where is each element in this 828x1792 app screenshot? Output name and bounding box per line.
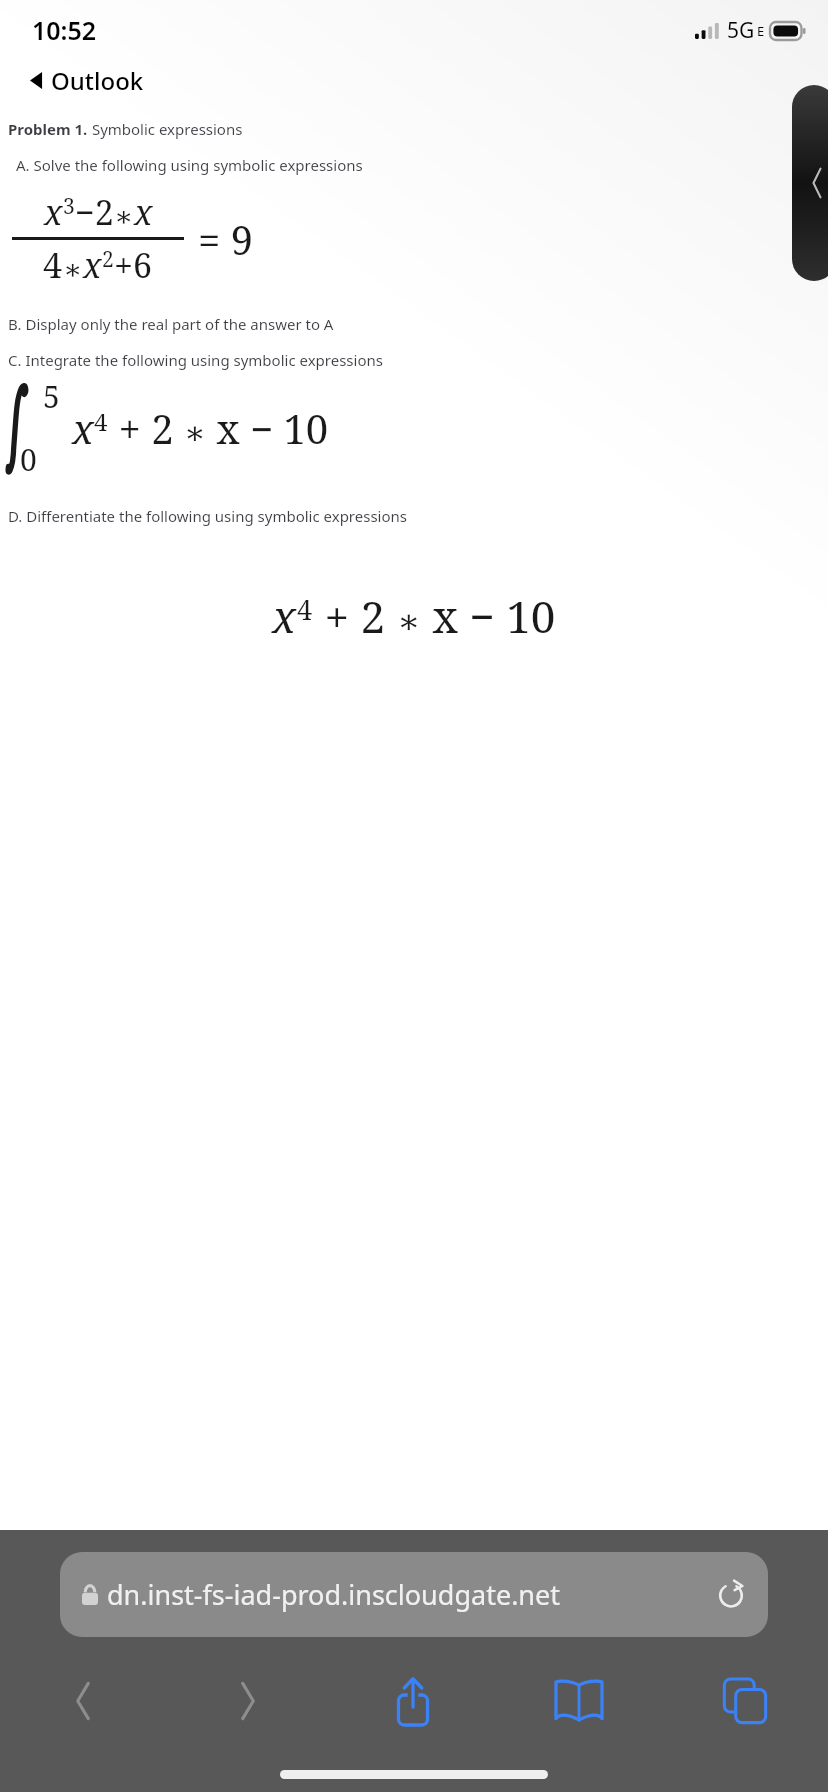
staticText: 5G [727,16,755,45]
staticText: x [134,189,153,235]
button[interactable]: Share [330,1663,496,1739]
staticText: 4 [297,591,313,628]
staticText: 2 [102,245,114,274]
staticText: A. Solve the following using symbolic ex… [16,155,363,175]
staticText: x − 10 [421,586,556,646]
staticText: + 2 [313,586,397,646]
button[interactable]: Tabs [662,1663,828,1739]
button[interactable]: Bookmarks [496,1663,662,1739]
staticText: D. Differentiate the following using sym… [8,506,407,526]
staticText: 4 [94,405,108,438]
staticText: ∗ [397,601,421,641]
button[interactable]: Back [0,1663,165,1739]
staticText: −2 [75,189,114,235]
staticText: Outlook [51,64,144,97]
staticText: = 9 [198,212,254,266]
button[interactable]: Forward [165,1663,330,1739]
staticText: 10:52 [32,13,97,47]
staticText: 0 [20,439,37,480]
staticText: x [83,242,102,288]
staticText: dn.inst-fs-iad-prod.inscloudgate.net [107,1576,710,1613]
button[interactable]: Reload page [716,1580,746,1610]
staticText: ∗ [114,200,134,233]
staticText: x [272,586,297,646]
staticText: 4 [43,242,63,288]
staticText: + 2 [108,401,184,455]
staticText: 5 [43,376,60,417]
button[interactable]: dn.inst-fs-iad-prod.inscloudgate.net [60,1552,768,1637]
staticText: Problem 1. [8,119,88,139]
button[interactable]: Outlook [26,60,148,101]
staticText: x [72,401,94,455]
staticText: C. Integrate the following using symboli… [8,350,383,370]
staticText: B. Display only the real part of the ans… [8,314,334,334]
staticText: 3 [63,192,75,221]
staticText: +6 [114,242,153,288]
staticText: E [757,22,765,40]
staticText: ∗ [63,253,83,286]
staticText: ∗ [184,414,206,451]
button[interactable]: Back to previous app [792,85,828,281]
staticText: x − 10 [206,401,329,455]
staticText: Symbolic expressions [88,119,243,139]
staticText: x [44,189,63,235]
